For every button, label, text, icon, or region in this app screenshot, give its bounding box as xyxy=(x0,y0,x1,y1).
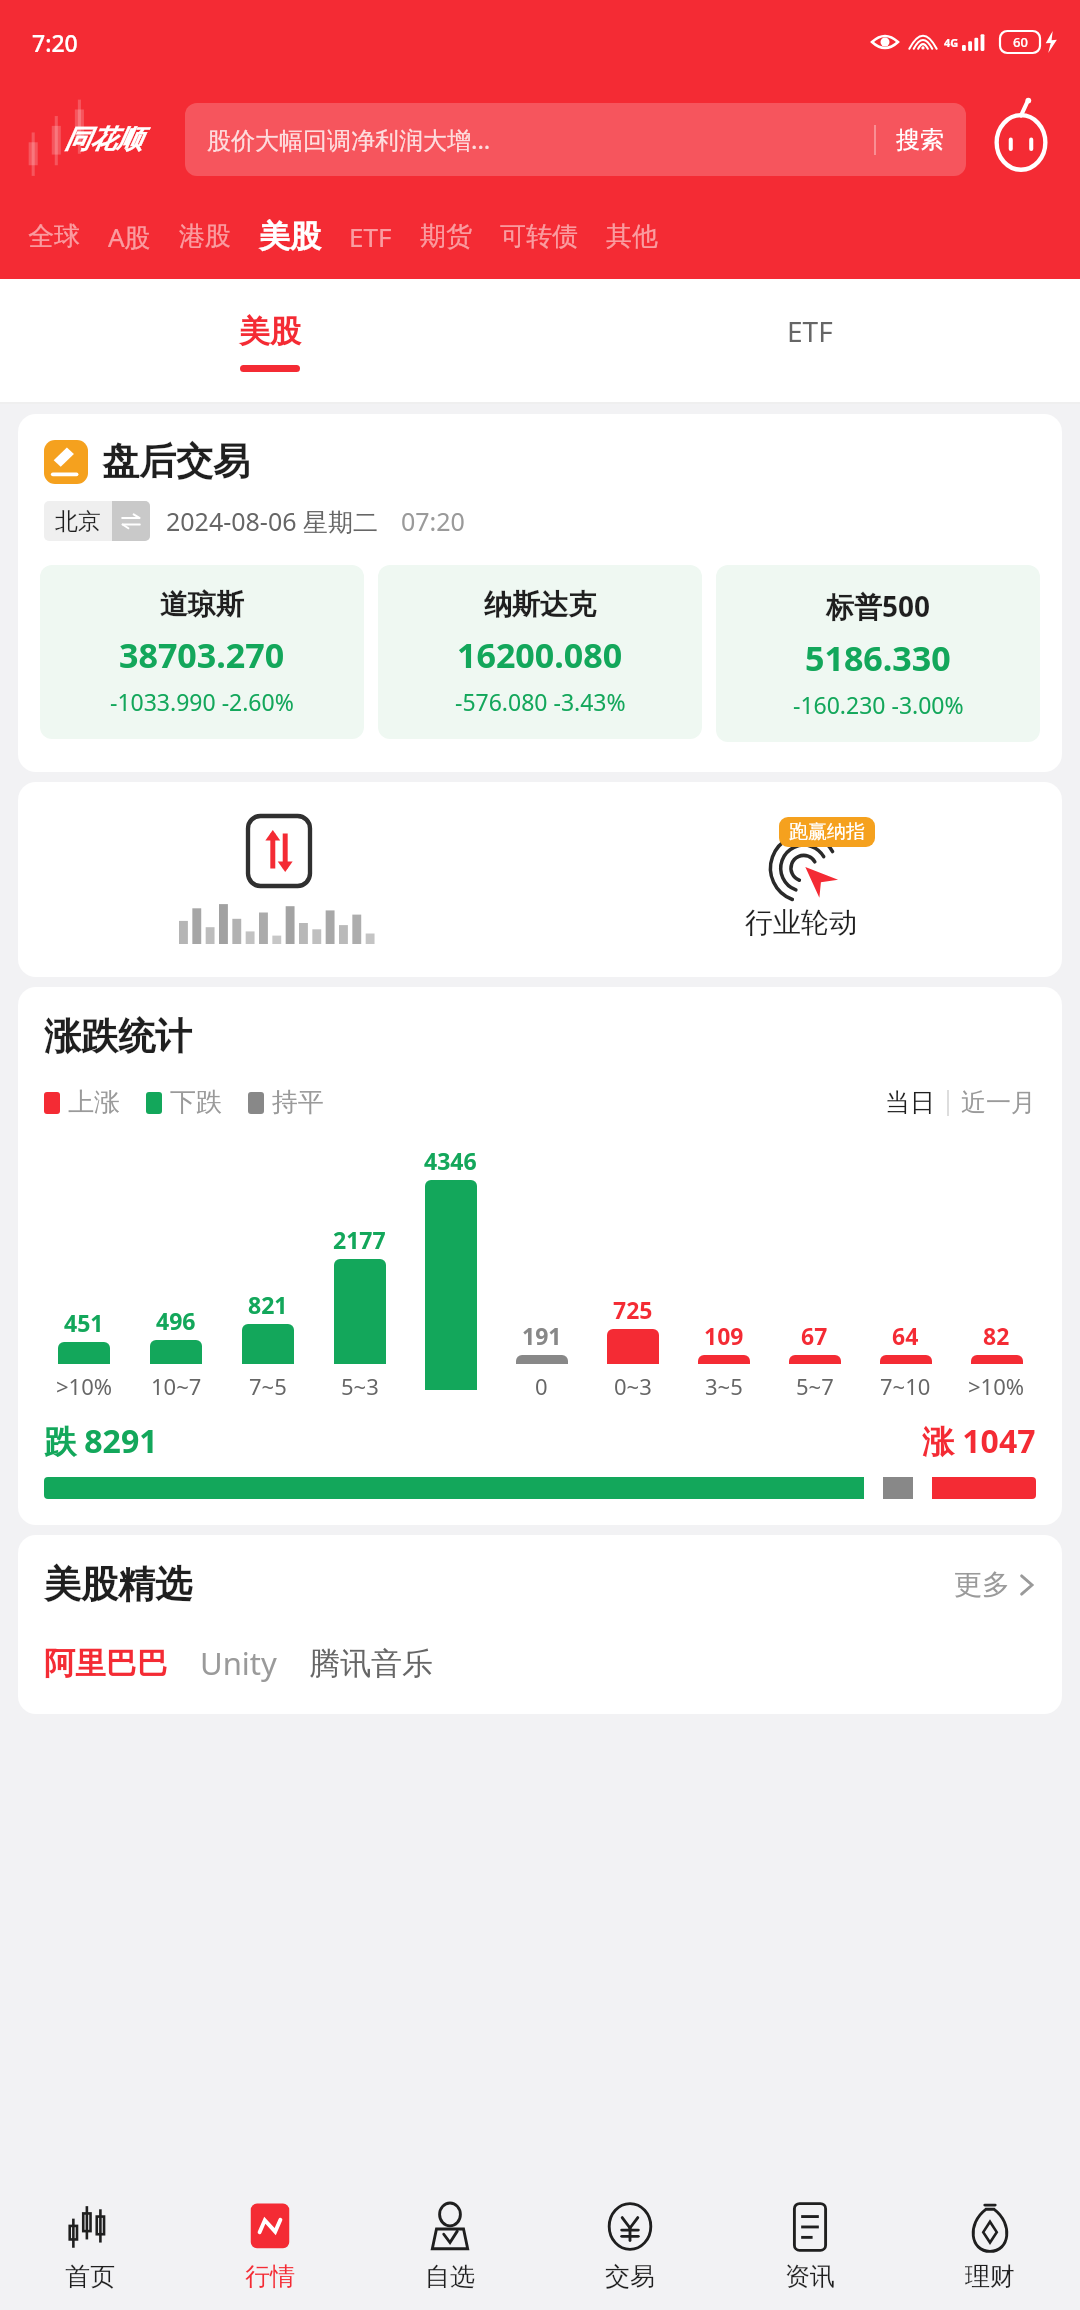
button[interactable]: 智能助手 xyxy=(982,100,1060,178)
staticText: 美股 xyxy=(239,312,301,351)
button[interactable]: 北京 xyxy=(44,501,150,541)
staticText: 当日 xyxy=(885,1087,935,1118)
staticText: 821 xyxy=(248,1289,288,1320)
button[interactable]: 标普500 xyxy=(716,565,1040,742)
staticText: 2177 xyxy=(333,1224,386,1255)
button[interactable]: 跑赢纳指 xyxy=(540,782,1062,977)
staticText: ETF xyxy=(349,219,392,254)
staticText: -1033.990 -2.60% xyxy=(110,686,294,717)
staticText: 64 xyxy=(892,1320,919,1351)
staticText: 3~5 xyxy=(705,1371,743,1401)
staticText: 191 xyxy=(522,1320,562,1351)
staticText: 下跌 xyxy=(170,1086,222,1119)
staticText: 5~3 xyxy=(341,1371,379,1401)
button[interactable]: 腾讯音乐 xyxy=(309,1644,433,1683)
button[interactable]: A股 xyxy=(94,219,165,255)
button[interactable]: 行情 xyxy=(180,2180,360,2310)
button[interactable]: 港股 xyxy=(165,220,245,253)
button[interactable]: Unity xyxy=(200,1642,277,1684)
button[interactable]: 美股 xyxy=(0,279,540,404)
staticText: A股 xyxy=(108,219,151,255)
staticText: 4G xyxy=(944,35,959,50)
button[interactable]: 全球 xyxy=(14,220,94,253)
staticText: ETF xyxy=(787,312,833,350)
button[interactable]: 道琼斯 xyxy=(40,565,364,739)
button[interactable]: 更多 xyxy=(954,1567,1036,1602)
staticText: -576.080 -3.43% xyxy=(455,686,626,717)
button[interactable]: 美股 xyxy=(245,217,335,256)
button[interactable]: 首页 xyxy=(0,2180,180,2310)
staticText: 82 xyxy=(983,1320,1010,1351)
staticText: 股价大幅回调净利润大增... xyxy=(207,123,874,156)
staticText: 跌 8291 xyxy=(44,1419,158,1463)
staticText: 全球 xyxy=(28,220,80,253)
staticText: 5186.330 xyxy=(805,635,951,681)
button[interactable]: 涨跌统计 xyxy=(44,1013,192,1060)
staticText: 腾讯音乐 xyxy=(309,1644,433,1683)
staticText: -160.230 -3.00% xyxy=(793,689,964,720)
staticText: 07:20 xyxy=(401,504,465,538)
staticText: 持平 xyxy=(272,1086,324,1119)
staticText: 行业轮动 xyxy=(745,905,857,940)
staticText: 阿里巴巴 xyxy=(44,1644,168,1683)
staticText: 7:20 xyxy=(32,27,78,58)
staticText: 7~5 xyxy=(249,1371,287,1401)
button[interactable]: 可转债 xyxy=(486,220,592,253)
staticText: >10% xyxy=(56,1371,113,1401)
button[interactable]: 自选 xyxy=(360,2180,540,2310)
staticText: >10% xyxy=(968,1371,1025,1401)
staticText: 行情 xyxy=(245,2261,295,2292)
staticText: 北京 xyxy=(55,507,101,536)
staticText: 涨 1047 xyxy=(922,1419,1036,1463)
button[interactable]: 期货 xyxy=(406,220,486,253)
button[interactable]: 纳斯达克 xyxy=(378,565,702,739)
staticText: 自选 xyxy=(425,2261,475,2292)
staticText: 美股精选 xyxy=(44,1561,192,1608)
button[interactable]: 盘后交易 xyxy=(44,438,250,485)
staticText: 10~7 xyxy=(151,1371,202,1401)
staticText: 4346 xyxy=(424,1145,477,1176)
staticText: 7~10 xyxy=(880,1371,931,1401)
staticText: 可转债 xyxy=(500,220,578,253)
button[interactable]: 阿里巴巴 xyxy=(44,1644,168,1683)
staticText: 0 xyxy=(535,1371,548,1401)
staticText: 跑赢纳指 xyxy=(789,820,865,844)
button[interactable]: 理财 xyxy=(900,2180,1080,2310)
button[interactable]: 资讯 xyxy=(720,2180,900,2310)
button[interactable]: 交易 xyxy=(540,2180,720,2310)
staticText: 标普500 xyxy=(826,587,931,625)
button[interactable] xyxy=(18,782,540,977)
button[interactable]: ETF xyxy=(540,279,1080,404)
staticText: 近一月 xyxy=(961,1087,1036,1118)
staticText: 其他 xyxy=(606,220,658,253)
staticText: 16200.080 xyxy=(457,632,623,678)
button[interactable]: ETF xyxy=(335,219,406,254)
staticText: 496 xyxy=(156,1305,196,1336)
staticText: 109 xyxy=(704,1320,744,1351)
staticText: Unity xyxy=(200,1642,277,1684)
staticText: 上涨 xyxy=(68,1086,120,1119)
staticText: 2024-08-06 星期二 xyxy=(166,504,379,538)
staticText: 盘后交易 xyxy=(102,438,250,485)
button[interactable]: 近一月 xyxy=(961,1087,1036,1118)
staticText: 更多 xyxy=(954,1567,1010,1602)
staticText: 交易 xyxy=(605,2261,655,2292)
staticText: 60 xyxy=(1013,33,1028,51)
button[interactable]: 股价大幅回调净利润大增... xyxy=(185,103,966,176)
staticText: 纳斯达克 xyxy=(484,587,596,622)
staticText: 67 xyxy=(801,1320,828,1351)
staticText: 725 xyxy=(613,1294,653,1325)
staticText: 理财 xyxy=(965,2261,1015,2292)
button[interactable]: 其他 xyxy=(592,220,672,253)
staticText: 搜索 xyxy=(896,125,944,155)
staticText: 451 xyxy=(64,1307,104,1338)
staticText: 期货 xyxy=(420,220,472,253)
staticText: 首页 xyxy=(65,2261,115,2292)
staticText: 0~3 xyxy=(614,1371,652,1401)
staticText: 道琼斯 xyxy=(160,587,244,622)
staticText: 美股 xyxy=(259,217,321,256)
staticText: 5~7 xyxy=(796,1371,834,1401)
button[interactable]: 当日 xyxy=(885,1087,935,1118)
staticText: 38703.270 xyxy=(119,632,285,678)
